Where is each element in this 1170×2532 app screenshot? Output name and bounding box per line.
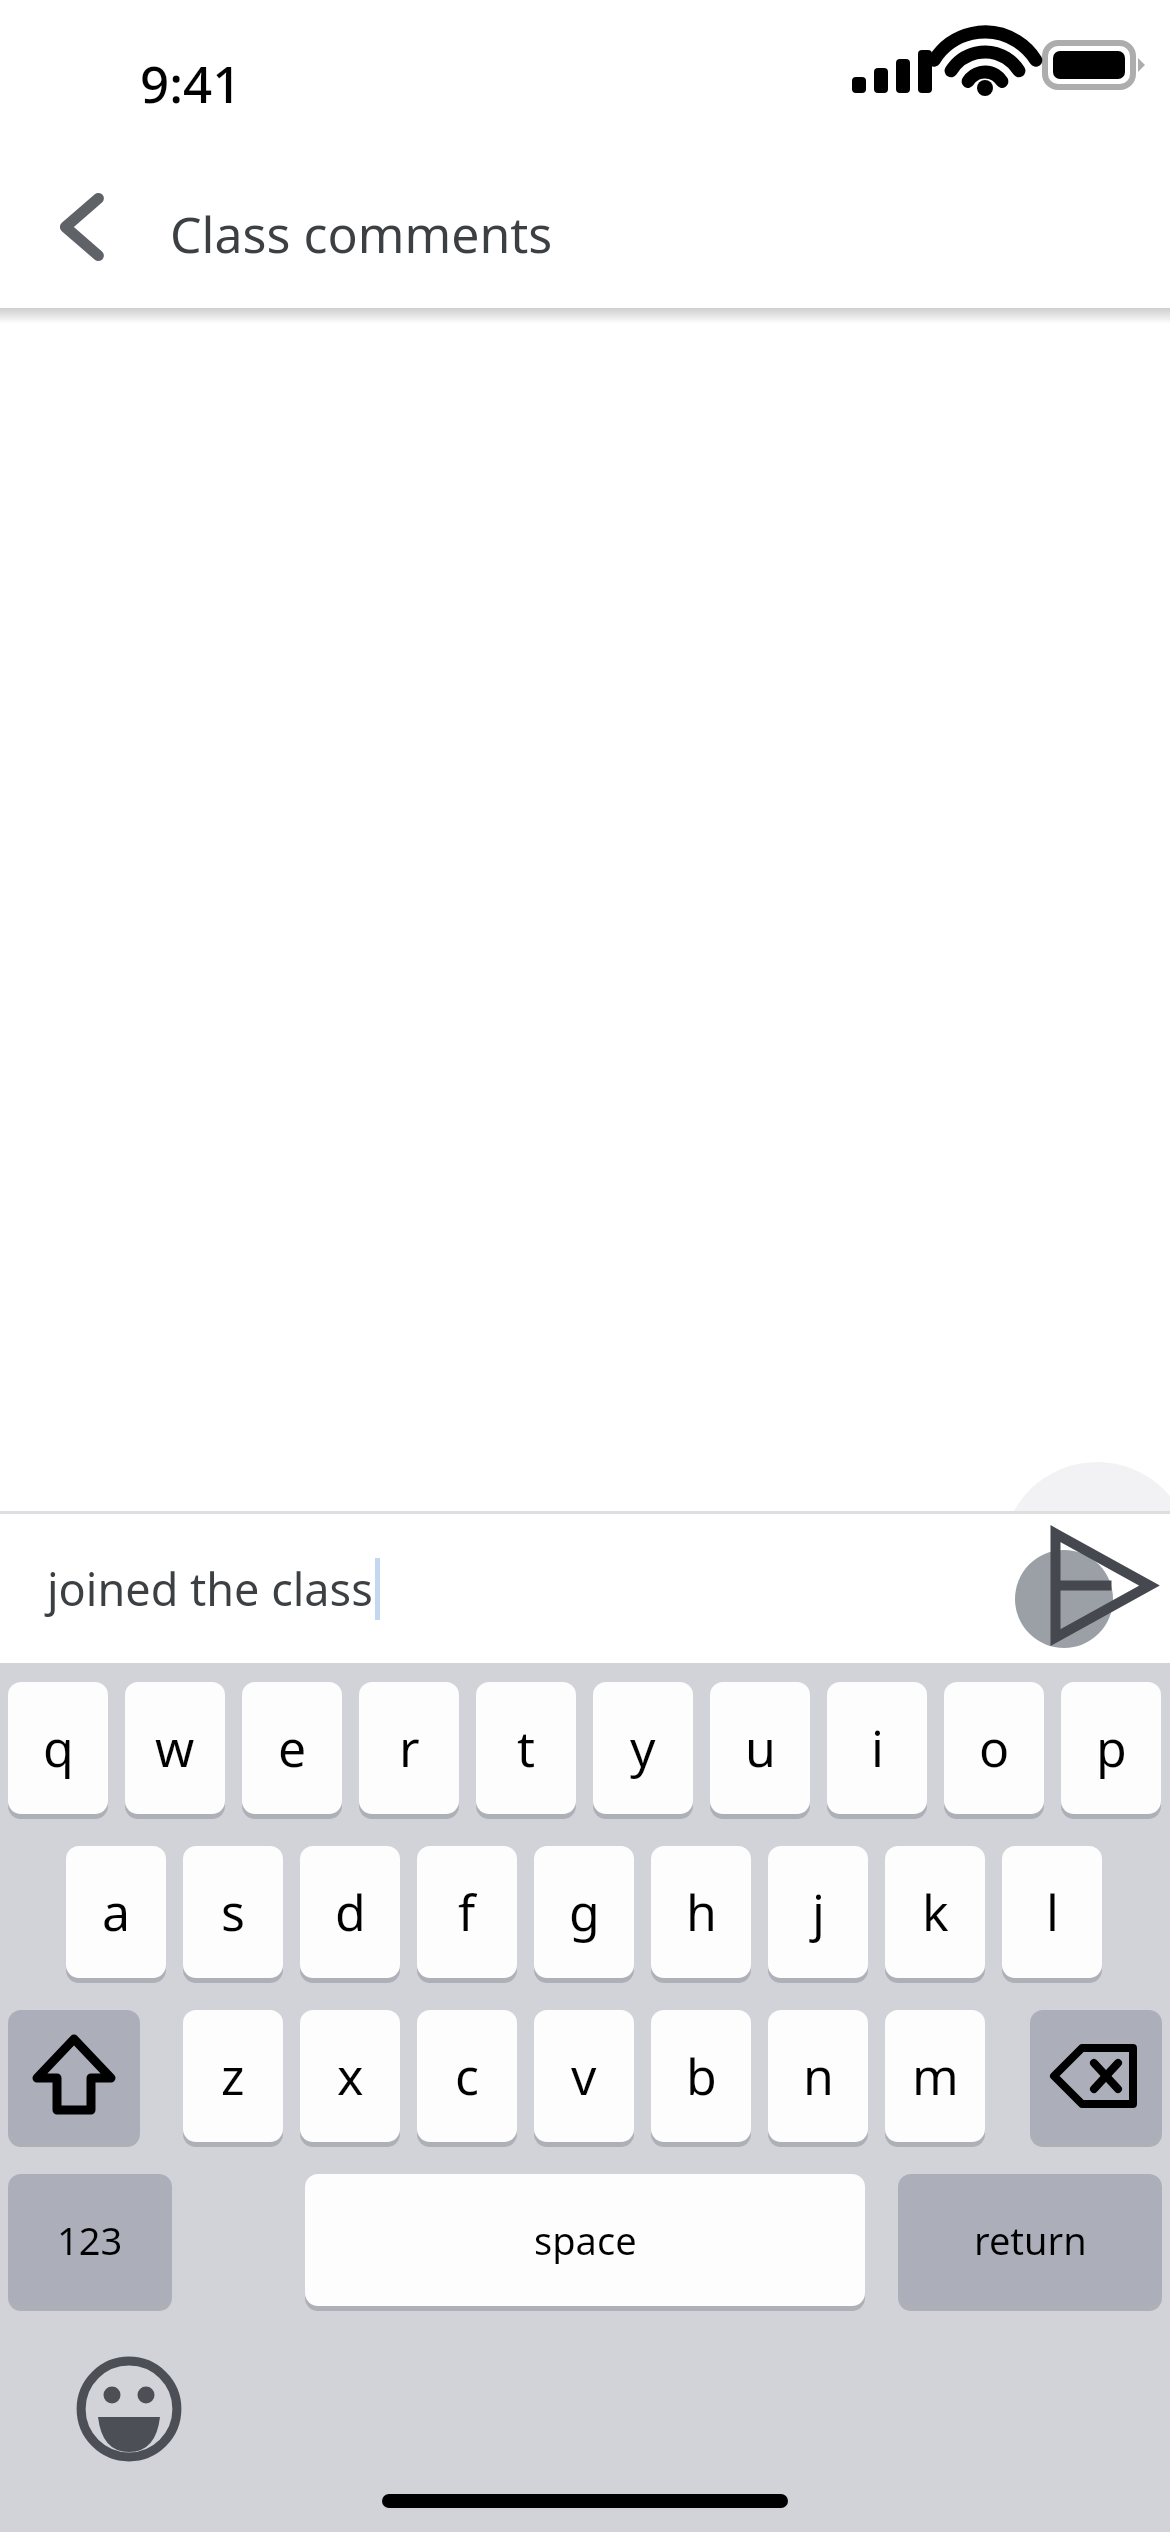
button[interactable]: Back <box>28 172 138 282</box>
button[interactable]: joined the class <box>47 1514 947 1663</box>
button[interactable]: Backspace <box>1030 2010 1162 2142</box>
button[interactable]: r <box>359 1682 459 1814</box>
button[interactable]: l <box>1002 1846 1102 1978</box>
button[interactable]: m <box>885 2010 985 2142</box>
staticText: e <box>278 1714 307 1782</box>
staticText: Class comments <box>170 200 553 268</box>
button[interactable]: Send <box>1000 1514 1170 1663</box>
staticText: q <box>43 1714 74 1782</box>
button[interactable]: b <box>651 2010 751 2142</box>
button[interactable]: g <box>534 1846 634 1978</box>
staticText: z <box>221 2042 245 2110</box>
staticText: 9:41 <box>140 48 242 117</box>
staticText: m <box>912 2042 959 2110</box>
staticText: y <box>630 1714 656 1782</box>
button[interactable]: u <box>710 1682 810 1814</box>
staticText: f <box>458 1878 476 1946</box>
button[interactable]: p <box>1061 1682 1161 1814</box>
staticText: u <box>745 1714 776 1782</box>
button[interactable]: w <box>125 1682 225 1814</box>
staticText: return <box>974 2214 1087 2266</box>
button[interactable]: Emoji keyboard <box>72 2352 186 2466</box>
button[interactable]: o <box>944 1682 1044 1814</box>
staticText: s <box>221 1878 245 1946</box>
staticText: w <box>155 1714 195 1782</box>
button[interactable]: y <box>593 1682 693 1814</box>
button[interactable]: i <box>827 1682 927 1814</box>
button[interactable]: d <box>300 1846 400 1978</box>
button[interactable]: h <box>651 1846 751 1978</box>
staticText: joined the class <box>47 1558 373 1619</box>
button[interactable]: k <box>885 1846 985 1978</box>
staticText: x <box>337 2042 364 2110</box>
button[interactable]: j <box>768 1846 868 1978</box>
staticText: b <box>686 2042 717 2110</box>
staticText: l <box>1046 1878 1059 1946</box>
staticText: i <box>871 1714 884 1782</box>
button[interactable]: t <box>476 1682 576 1814</box>
staticText: c <box>455 2042 479 2110</box>
button[interactable]: 123 <box>8 2174 172 2306</box>
button[interactable]: c <box>417 2010 517 2142</box>
button[interactable]: s <box>183 1846 283 1978</box>
button[interactable]: v <box>534 2010 634 2142</box>
button[interactable]: space <box>305 2174 865 2306</box>
button[interactable]: q <box>8 1682 108 1814</box>
staticText: r <box>399 1714 420 1782</box>
button[interactable]: e <box>242 1682 342 1814</box>
staticText: n <box>803 2042 834 2110</box>
staticText: g <box>569 1878 600 1946</box>
button[interactable]: return <box>898 2174 1162 2306</box>
button[interactable]: x <box>300 2010 400 2142</box>
staticText: space <box>534 2214 637 2266</box>
button[interactable]: f <box>417 1846 517 1978</box>
staticText: o <box>979 1714 1010 1782</box>
staticText: j <box>812 1878 825 1946</box>
staticText: v <box>571 2042 597 2110</box>
button[interactable]: a <box>66 1846 166 1978</box>
staticText: d <box>335 1878 366 1946</box>
button[interactable]: n <box>768 2010 868 2142</box>
staticText: k <box>922 1878 949 1946</box>
button[interactable]: z <box>183 2010 283 2142</box>
staticText: p <box>1096 1714 1127 1782</box>
staticText: 123 <box>57 2214 123 2266</box>
staticText: a <box>102 1878 131 1946</box>
staticText: t <box>517 1714 536 1782</box>
staticText: h <box>686 1878 717 1946</box>
button[interactable]: Shift <box>8 2010 140 2142</box>
